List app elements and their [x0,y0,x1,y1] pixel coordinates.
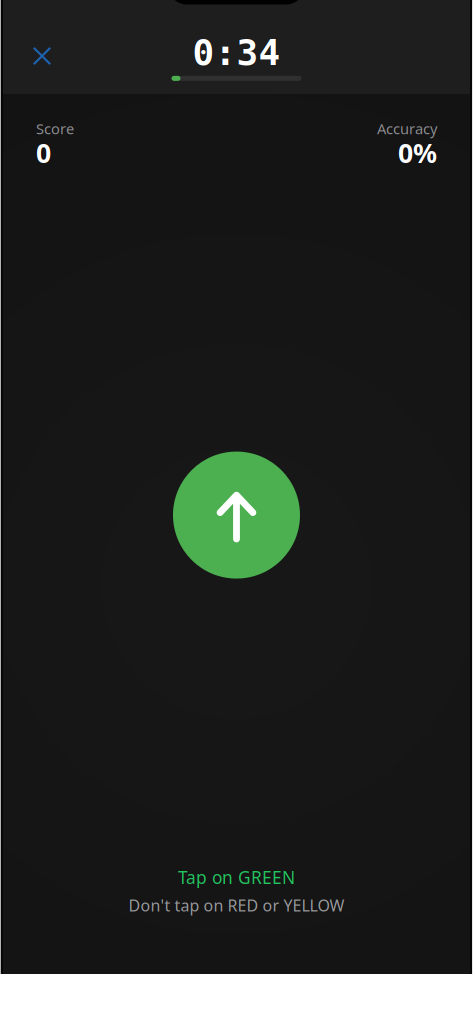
button[interactable]: Tap the green target [173,452,300,579]
staticText: 0:34 [192,32,280,73]
staticText: Don't tap on RED or YELLOW [128,895,344,916]
staticText: 0% [398,135,437,170]
button[interactable]: Close [19,33,65,79]
staticText: Accuracy [377,119,437,138]
staticText: Score [36,119,74,138]
staticText: Tap on GREEN [178,866,295,889]
staticText: 0 [36,135,51,170]
